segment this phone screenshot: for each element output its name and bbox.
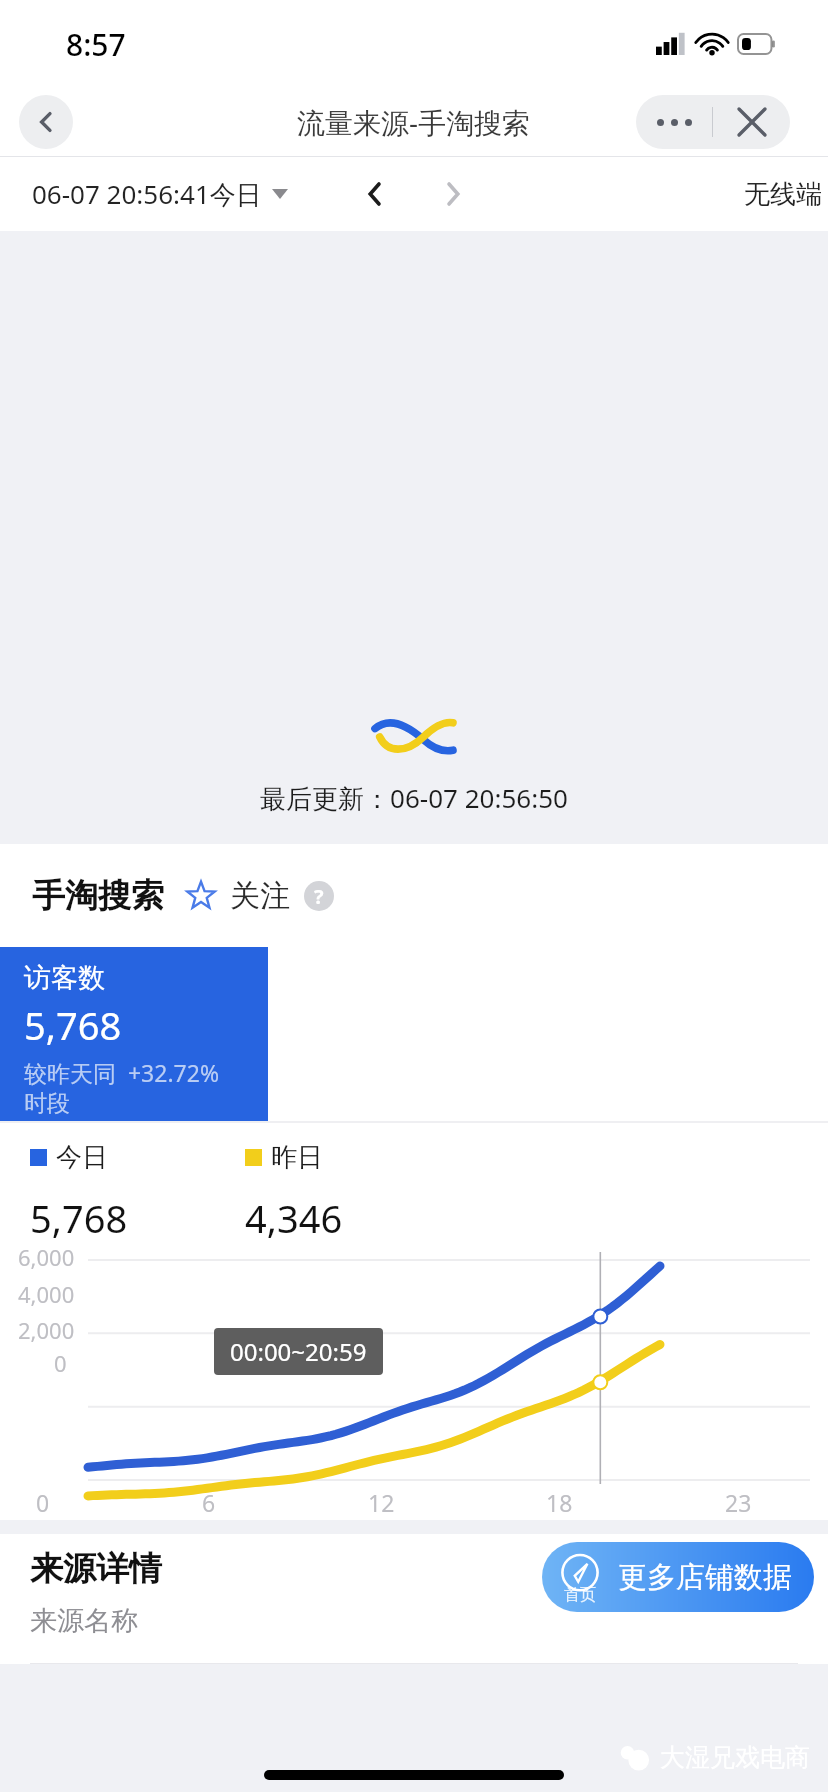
button[interactable]: 06-07 20:56:41今日 — [32, 176, 288, 212]
button[interactable]: 首页 — [542, 1542, 814, 1612]
staticText: 5,768 — [30, 1192, 245, 1244]
staticText: 23 — [725, 1487, 752, 1518]
staticText: 访客数 — [24, 961, 105, 995]
staticText: 手淘搜索 — [32, 875, 164, 917]
staticText: 6,000 — [18, 1242, 75, 1272]
button[interactable]: Previous day — [347, 166, 403, 222]
staticText: 首页 — [564, 1585, 596, 1605]
staticText: ? — [314, 883, 324, 910]
staticText: 5,768 — [24, 999, 122, 1051]
staticText: 00:00~20:59 — [230, 1335, 367, 1368]
staticText: 0 — [54, 1348, 67, 1378]
staticText: 4,346 — [245, 1192, 343, 1244]
staticText: 流量来源-手淘搜索 — [297, 103, 531, 141]
staticText: 较昨天同 +32.72% 时段 — [24, 1057, 220, 1118]
button[interactable]: Follow — [186, 877, 290, 915]
button[interactable]: 访客数 — [0, 947, 268, 1121]
button[interactable]: Next day — [425, 166, 481, 222]
staticText: 6 — [202, 1487, 216, 1518]
staticText: 今日 — [56, 1141, 108, 1174]
button[interactable]: 无线端 — [744, 178, 822, 211]
button[interactable]: Close — [713, 95, 790, 149]
button[interactable]: Back — [19, 95, 73, 149]
button[interactable]: Help — [304, 881, 334, 911]
staticText: 06-07 20:56:41今日 — [32, 176, 262, 212]
staticText: 昨日 — [271, 1141, 323, 1174]
button[interactable]: More options — [636, 95, 712, 149]
staticText: 12 — [368, 1487, 395, 1518]
staticText: 18 — [546, 1487, 573, 1518]
staticText: 8:57 — [66, 24, 126, 65]
staticText: 来源详情 — [30, 1548, 162, 1590]
staticText: 来源名称 — [30, 1604, 138, 1638]
staticText: 4,000 — [18, 1279, 75, 1309]
staticText: 最后更新：06-07 20:56:50 — [260, 780, 568, 816]
staticText: 关注 — [230, 877, 290, 915]
staticText: 2,000 — [18, 1315, 75, 1345]
staticText: 更多店铺数据 — [618, 1559, 792, 1596]
staticText: 大湿兄戏电商 — [660, 1742, 810, 1773]
staticText: 0 — [36, 1487, 50, 1518]
